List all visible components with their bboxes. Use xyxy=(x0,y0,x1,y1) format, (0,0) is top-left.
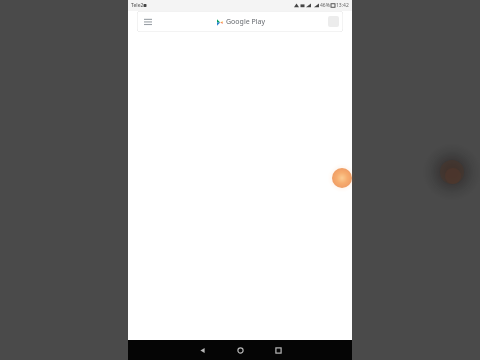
button[interactable]: Account xyxy=(326,14,341,29)
button[interactable]: Back xyxy=(183,340,221,360)
button[interactable]: Recent apps xyxy=(259,340,297,360)
staticText: Google Play xyxy=(226,17,265,27)
button[interactable]: Home xyxy=(221,340,259,360)
staticText: 46% xyxy=(320,2,330,9)
staticText: 13:42 xyxy=(336,2,349,9)
staticText: Tele2 xyxy=(131,2,144,9)
button[interactable]: Open navigation menu xyxy=(140,14,155,29)
